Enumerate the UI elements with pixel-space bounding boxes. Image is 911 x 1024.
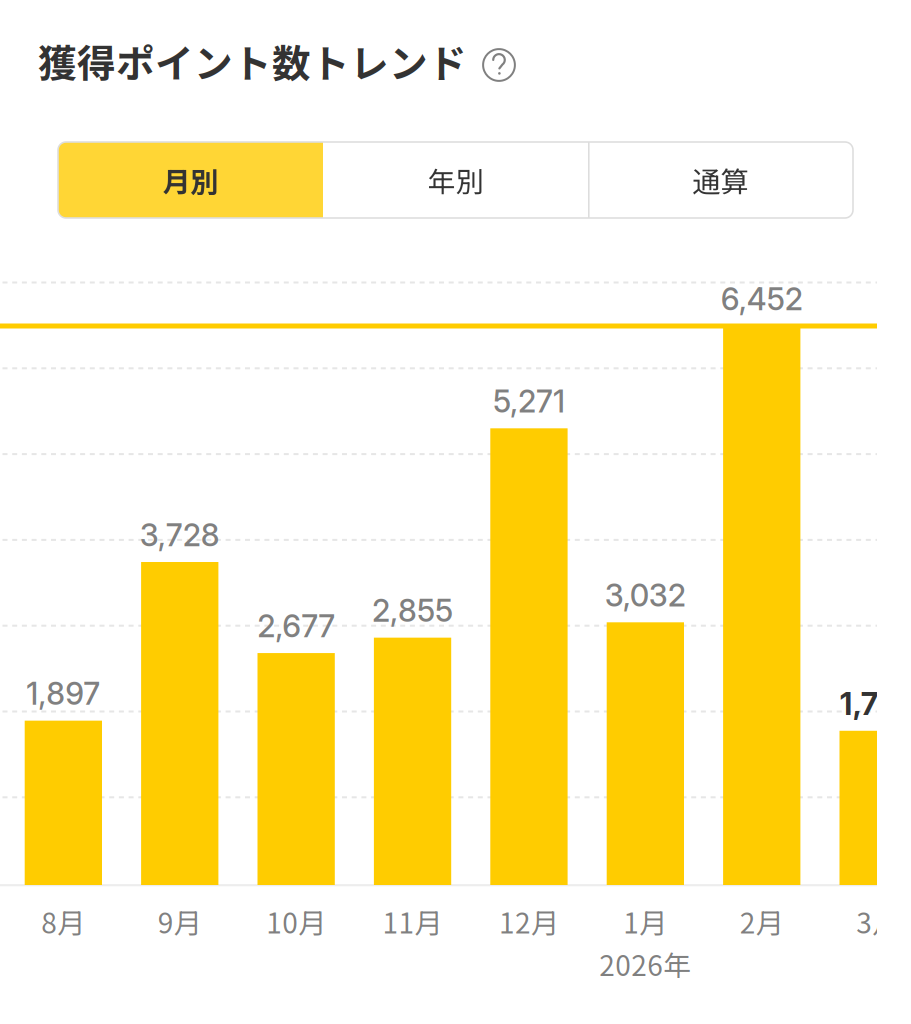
staticText: 3,728 (140, 516, 220, 554)
staticText: 3,032 (605, 577, 686, 614)
staticText: 5,271 (493, 383, 565, 420)
staticText: 3月 (856, 901, 900, 941)
button[interactable]: 年別 (323, 142, 588, 218)
staticText: 10月 (266, 901, 326, 941)
staticText: 2,855 (372, 592, 453, 629)
button[interactable]: 月別 (58, 142, 323, 218)
staticText: 1月 (623, 901, 667, 941)
staticText: 6,452 (721, 280, 803, 317)
button[interactable]: 通算 (588, 142, 853, 218)
staticText: 12月 (499, 901, 559, 941)
staticText: 年別 (427, 160, 483, 200)
button[interactable]: ポイントについてのヘルプ (482, 48, 516, 82)
staticText: 8月 (41, 901, 85, 941)
staticText: 9月 (158, 901, 202, 941)
staticText: 11月 (383, 901, 443, 941)
staticText: 通算 (692, 160, 748, 200)
staticText: 2026年 (599, 943, 691, 984)
staticText: 1,897 (26, 675, 100, 712)
staticText: 2月 (740, 901, 784, 941)
staticText: 獲得ポイント数トレンド (38, 33, 467, 89)
staticText: 月別 (162, 160, 218, 200)
staticText: 2,677 (257, 607, 335, 645)
staticText: 1,780 (840, 685, 911, 722)
